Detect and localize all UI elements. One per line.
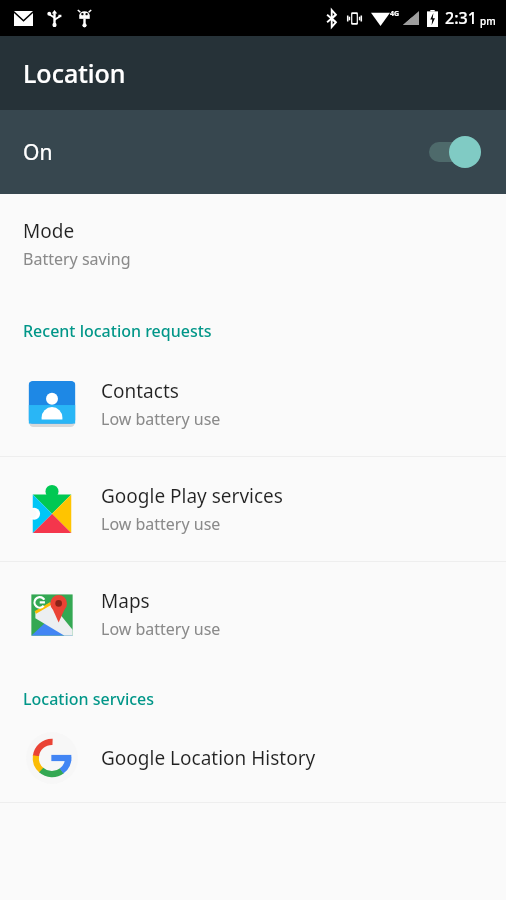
staticText: Mode	[23, 218, 75, 244]
staticText: Google Location History	[101, 745, 316, 771]
button[interactable]: Google Play services	[0, 457, 506, 561]
staticText: Location services	[23, 688, 155, 710]
button[interactable]: Mode	[0, 204, 506, 284]
staticText: Battery saving	[23, 248, 131, 270]
button[interactable]: Google Location History	[0, 714, 506, 802]
button[interactable]: On	[0, 110, 506, 194]
staticText: Location	[23, 56, 126, 90]
staticText: Contacts	[101, 378, 179, 404]
staticText: 2:31	[445, 7, 477, 29]
staticText: Low battery use	[101, 618, 221, 640]
staticText: Low battery use	[101, 408, 221, 430]
button[interactable]: Maps	[0, 562, 506, 666]
button[interactable]: Contacts	[0, 352, 506, 456]
staticText: 4G	[390, 9, 400, 19]
staticText: Maps	[101, 588, 150, 614]
staticText: pm	[480, 14, 496, 28]
staticText: Low battery use	[101, 513, 221, 535]
staticText: Google Play services	[101, 483, 283, 509]
staticText: Recent location requests	[23, 320, 212, 342]
staticText: On	[23, 138, 53, 167]
